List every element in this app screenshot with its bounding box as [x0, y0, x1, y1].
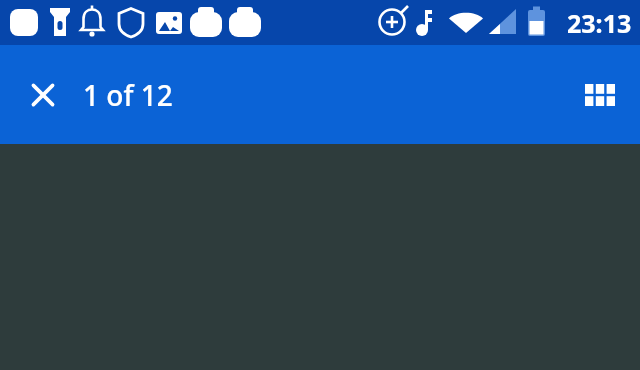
staticText: 23:13 [567, 6, 632, 40]
button[interactable]: Grid view [576, 71, 624, 119]
staticText: 1 of 12 [83, 76, 173, 114]
button[interactable]: Close [19, 71, 67, 119]
